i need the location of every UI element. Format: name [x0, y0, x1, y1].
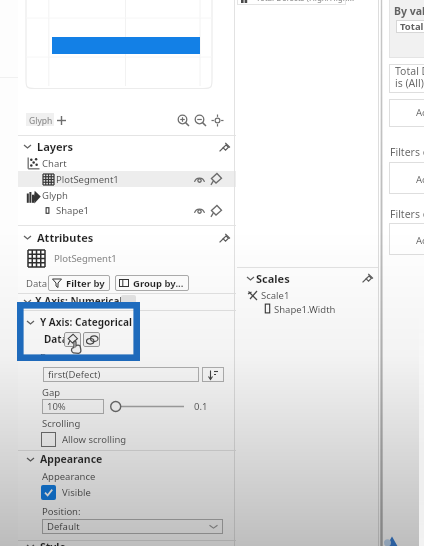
button[interactable]: first(Defect) [43, 367, 199, 382]
staticText: By value [394, 4, 424, 18]
staticText: Data [26, 277, 48, 290]
staticText: Shape1 [56, 204, 90, 217]
staticText: Default [47, 520, 80, 533]
button[interactable]: Ac [389, 162, 424, 194]
button[interactable]: Sort order [202, 367, 224, 382]
staticText: PlotSegment1 [54, 252, 117, 265]
button[interactable]: Filter Shape1 [210, 205, 222, 217]
staticText: Total Defects (High/High... [256, 0, 355, 3]
button[interactable]: Group by [83, 332, 100, 347]
staticText: Total D [400, 20, 424, 33]
staticText: Allow scrolling [62, 433, 127, 446]
button[interactable]: Link axis [121, 295, 136, 307]
staticText: Filters on [390, 145, 424, 159]
button[interactable]: Toggle visibility of PlotSegment1 [194, 174, 205, 185]
button[interactable]: Pin Layers panel [218, 140, 231, 153]
button[interactable]: Zoom out [194, 114, 207, 127]
button[interactable]: 10% [42, 399, 104, 414]
button[interactable]: Filter by [48, 275, 110, 291]
button[interactable]: Filter PlotSegment1 [210, 173, 222, 185]
staticText: Ac [416, 234, 424, 247]
staticText: Total De [395, 64, 424, 78]
staticText: 10% [47, 400, 66, 413]
staticText: Attributes [37, 230, 94, 245]
staticText: Ac [416, 173, 424, 186]
button[interactable]: Visible [41, 485, 91, 500]
button[interactable]: Ac [389, 99, 424, 127]
staticText: Gap [42, 386, 61, 399]
staticText: Appearance [42, 470, 96, 483]
staticText: Ac [416, 106, 424, 119]
staticText: Glyph [29, 115, 53, 127]
button[interactable]: Filter by [64, 332, 81, 347]
staticText: 0.1 [194, 400, 208, 413]
staticText: Layers [37, 139, 74, 154]
button[interactable]: Total D [396, 20, 424, 33]
staticText: first(Defect) [48, 368, 101, 381]
staticText: Y Axis: Categorical [40, 315, 132, 329]
staticText: Filters on [390, 207, 424, 221]
staticText: Visible [62, 486, 91, 499]
button[interactable]: Group by... [115, 275, 189, 291]
staticText: Filter by [66, 277, 105, 290]
button[interactable]: Zoom in [177, 114, 190, 127]
button[interactable]: Allow scrolling [41, 431, 127, 447]
staticText: Scrolling [42, 417, 81, 430]
button[interactable]: Pin Scales panel [361, 271, 374, 284]
staticText: Group by... [133, 277, 184, 290]
staticText: X Axis: Numerical [35, 294, 123, 308]
staticText: Appearance [40, 452, 103, 466]
staticText: is (All) [395, 76, 424, 90]
button[interactable]: Add glyph [55, 114, 68, 127]
staticText: Glyph [42, 189, 68, 202]
staticText: Position: [42, 505, 81, 518]
staticText: Data [40, 351, 62, 364]
button[interactable]: Default [42, 519, 223, 534]
staticText: PlotSegment1 [56, 173, 119, 186]
button[interactable]: Ac [389, 223, 424, 255]
staticText: Scales [256, 271, 290, 286]
button[interactable] [18, 171, 236, 187]
staticText: Chart [42, 157, 67, 170]
button[interactable]: Pin Attributes panel [218, 231, 231, 244]
staticText: Style [40, 540, 66, 546]
staticText: Scale1 [261, 289, 290, 302]
staticText: Shape1.Width [274, 303, 336, 316]
button[interactable]: Toggle visibility of Shape1 [194, 205, 205, 216]
button[interactable]: Fit to view [211, 114, 224, 127]
staticText: Data [44, 332, 68, 346]
